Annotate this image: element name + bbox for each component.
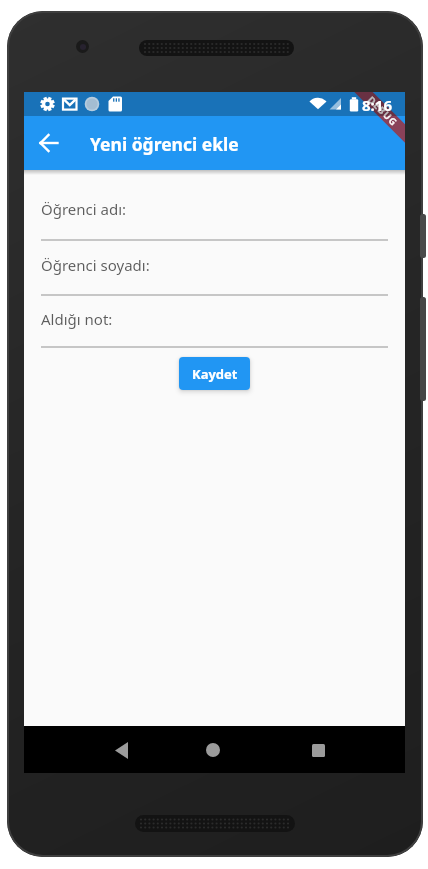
staticText: Aldığı not:	[41, 309, 113, 329]
staticText: 8:16	[362, 95, 392, 115]
button[interactable]	[195, 732, 231, 768]
button[interactable]	[28, 122, 70, 164]
staticText: Yeni öğrenci ekle	[90, 132, 239, 156]
staticText: Kaydet	[192, 365, 238, 383]
staticText: Öğrenci soyadı:	[41, 255, 150, 275]
button[interactable]	[41, 248, 388, 296]
button[interactable]	[41, 192, 388, 240]
staticText: DEBUG	[365, 93, 401, 130]
staticText: Öğrenci adı:	[41, 199, 127, 219]
button[interactable]	[103, 732, 139, 768]
button[interactable]	[41, 302, 388, 350]
button[interactable]: Kaydet	[179, 357, 250, 390]
button[interactable]	[300, 732, 336, 768]
